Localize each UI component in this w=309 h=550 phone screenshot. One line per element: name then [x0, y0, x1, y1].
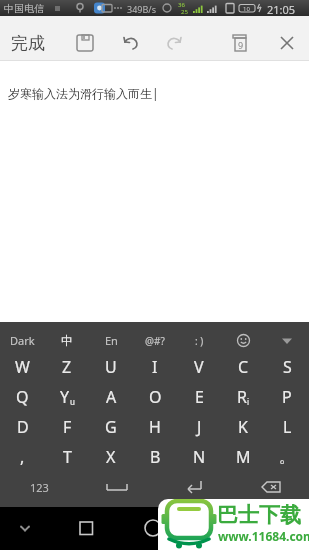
staticText: , — [20, 446, 25, 468]
staticText: B — [150, 446, 161, 468]
staticText: E — [195, 386, 204, 408]
button[interactable] — [72, 514, 100, 542]
staticText: D — [17, 416, 29, 438]
staticText: 岁寒输入法为滑行输入而生| — [8, 85, 159, 101]
button[interactable]: X — [89, 442, 133, 472]
staticText: u — [70, 396, 75, 407]
button[interactable] — [139, 514, 167, 542]
staticText: U — [105, 356, 117, 378]
button[interactable]: I — [133, 352, 177, 382]
button[interactable] — [273, 29, 301, 57]
staticText: 中国电信 — [4, 2, 44, 15]
button[interactable] — [78, 472, 155, 502]
button[interactable] — [155, 472, 232, 502]
button[interactable]: A — [89, 382, 133, 412]
button[interactable] — [71, 29, 99, 57]
staticText: C — [238, 356, 249, 378]
staticText: 25 — [181, 8, 188, 16]
button[interactable]: , — [0, 442, 45, 472]
staticText: I — [152, 356, 158, 378]
staticText: A — [106, 386, 117, 408]
staticText: 9 — [238, 39, 244, 51]
button[interactable]: Q — [0, 382, 45, 412]
button[interactable] — [221, 329, 265, 352]
staticText: @#? — [145, 334, 165, 348]
button[interactable]: B — [133, 442, 177, 472]
button[interactable]: 9 — [226, 29, 254, 57]
button[interactable]: E — [177, 382, 221, 412]
staticText: www.11684.com — [218, 528, 309, 544]
staticText: O — [149, 386, 162, 408]
staticText: 349B/s — [127, 3, 156, 15]
button[interactable]: T — [45, 442, 89, 472]
staticText: M — [236, 446, 251, 468]
staticText: 中 — [61, 333, 73, 348]
button[interactable]: : ) — [177, 329, 221, 352]
staticText: S — [283, 356, 292, 378]
staticText: F — [63, 416, 72, 438]
button[interactable]: L — [265, 412, 309, 442]
button[interactable]: Y — [45, 382, 89, 412]
staticText: W — [15, 356, 30, 378]
staticText: 10 — [243, 5, 250, 13]
button[interactable]: C — [221, 352, 265, 382]
button[interactable]: 巴士下载 — [158, 499, 309, 550]
staticText: 21:05 — [267, 2, 296, 17]
button[interactable]: M — [221, 442, 265, 472]
staticText: T — [63, 446, 72, 468]
button[interactable] — [161, 29, 189, 57]
staticText: X — [106, 446, 116, 468]
button[interactable]: U — [89, 352, 133, 382]
staticText: V — [194, 356, 204, 378]
button[interactable]: P — [265, 382, 309, 412]
button[interactable]: 123 — [0, 472, 78, 502]
button[interactable] — [11, 514, 39, 542]
staticText: N — [193, 446, 206, 468]
staticText: 。 — [279, 447, 295, 467]
button[interactable]: Dark — [0, 329, 45, 352]
staticText: : ) — [195, 334, 204, 348]
staticText: En — [105, 333, 118, 348]
button[interactable]: 中 — [45, 329, 89, 352]
button[interactable]: W — [0, 352, 45, 382]
staticText: R — [237, 386, 247, 408]
button[interactable] — [116, 29, 144, 57]
staticText: 123 — [30, 480, 49, 495]
button[interactable]: N — [177, 442, 221, 472]
button[interactable]: K — [221, 412, 265, 442]
staticText: Y — [60, 386, 70, 408]
staticText: 完成 — [11, 33, 45, 54]
button[interactable]: 完成 — [0, 24, 58, 61]
staticText: P — [282, 386, 292, 408]
button[interactable] — [232, 472, 309, 502]
button[interactable]: 。 — [265, 442, 309, 472]
staticText: G — [105, 416, 117, 438]
button[interactable]: O — [133, 382, 177, 412]
button[interactable]: F — [45, 412, 89, 442]
button[interactable]: S — [265, 352, 309, 382]
staticText: 巴士下载 — [217, 502, 301, 528]
staticText: 36 — [178, 1, 185, 9]
button[interactable]: H — [133, 412, 177, 442]
button[interactable]: G — [89, 412, 133, 442]
staticText: L — [283, 416, 292, 438]
staticText: H — [149, 416, 161, 438]
button[interactable]: D — [0, 412, 45, 442]
staticText: Q — [16, 386, 29, 408]
staticText: J — [197, 416, 202, 438]
staticText: Z — [62, 356, 72, 378]
button[interactable]: V — [177, 352, 221, 382]
button[interactable]: Z — [45, 352, 89, 382]
staticText: i — [247, 396, 250, 407]
button[interactable]: R — [221, 382, 265, 412]
button[interactable]: En — [89, 329, 133, 352]
button[interactable]: J — [177, 412, 221, 442]
button[interactable]: @#? — [133, 329, 177, 352]
button[interactable] — [265, 329, 309, 352]
staticText: K — [238, 416, 248, 438]
staticText: Dark — [10, 333, 35, 348]
